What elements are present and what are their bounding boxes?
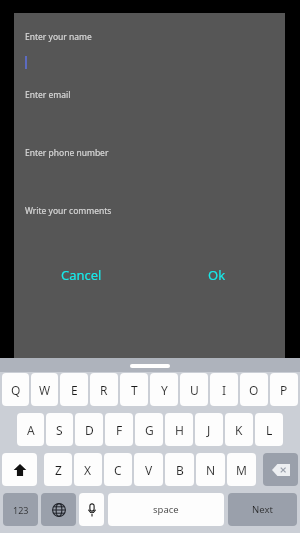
staticText: N: [206, 462, 216, 478]
staticText: C: [114, 462, 122, 478]
staticText: I: [222, 382, 227, 398]
button[interactable]: E: [60, 373, 88, 406]
button[interactable]: S: [46, 413, 73, 446]
button[interactable]: Y: [150, 373, 178, 406]
staticText: space: [153, 503, 179, 516]
button[interactable]: R: [90, 373, 118, 406]
button[interactable]: D: [75, 413, 103, 446]
staticText: J: [207, 422, 211, 438]
staticText: Z: [55, 462, 62, 478]
button[interactable]: B: [165, 453, 194, 486]
button[interactable]: space: [108, 493, 224, 526]
button[interactable]: Ok: [149, 260, 285, 290]
staticText: M: [236, 462, 247, 478]
staticText: P: [280, 382, 288, 398]
button[interactable]: A: [17, 413, 44, 446]
staticText: X: [84, 462, 92, 478]
staticText: E: [71, 382, 78, 398]
button[interactable]: Enter phone number: [14, 142, 285, 164]
button[interactable]: O: [240, 373, 268, 406]
button[interactable]: C: [104, 453, 132, 486]
staticText: U: [190, 382, 199, 398]
button[interactable]: Delete: [263, 453, 298, 486]
staticText: Q: [11, 382, 21, 398]
staticText: Cancel: [61, 266, 102, 284]
button[interactable]: Cancel: [14, 260, 149, 290]
button[interactable]: J: [195, 413, 223, 446]
staticText: D: [85, 422, 94, 438]
button[interactable]: Enter email: [14, 84, 285, 106]
staticText: B: [176, 462, 184, 478]
button[interactable]: N: [196, 453, 225, 486]
button[interactable]: G: [135, 413, 163, 446]
button[interactable]: Change keyboard language: [41, 493, 76, 526]
button[interactable]: M: [227, 453, 256, 486]
staticText: Next: [252, 503, 273, 516]
staticText: Write your comments: [25, 205, 112, 217]
staticText: V: [145, 462, 153, 478]
staticText: K: [235, 422, 243, 438]
button[interactable]: Next: [228, 493, 297, 526]
button[interactable]: [14, 48, 285, 76]
button[interactable]: W: [31, 373, 58, 406]
button[interactable]: 123: [3, 493, 38, 526]
button[interactable]: F: [105, 413, 133, 446]
button[interactable]: Q: [2, 373, 29, 406]
staticText: Enter phone number: [25, 147, 109, 159]
staticText: L: [266, 422, 273, 438]
staticText: A: [27, 422, 35, 438]
button[interactable]: Voice input: [79, 493, 104, 526]
button[interactable]: Write your comments: [14, 200, 285, 222]
button[interactable]: T: [120, 373, 148, 406]
staticText: Enter email: [25, 89, 71, 101]
staticText: Y: [161, 382, 168, 398]
button[interactable]: L: [255, 413, 283, 446]
staticText: S: [56, 422, 63, 438]
button[interactable]: I: [210, 373, 238, 406]
staticText: F: [116, 422, 123, 438]
button[interactable]: Enter your name: [14, 26, 285, 48]
staticText: G: [145, 422, 154, 438]
button[interactable]: Shift: [2, 453, 37, 486]
button[interactable]: H: [165, 413, 193, 446]
button[interactable]: K: [225, 413, 253, 446]
button[interactable]: V: [134, 453, 163, 486]
staticText: 123: [13, 504, 29, 516]
staticText: H: [175, 422, 184, 438]
button[interactable]: U: [180, 373, 208, 406]
staticText: Ok: [208, 266, 226, 284]
staticText: T: [131, 382, 138, 398]
staticText: W: [39, 382, 51, 398]
staticText: R: [100, 382, 108, 398]
button[interactable]: Z: [44, 453, 72, 486]
button[interactable]: P: [270, 373, 298, 406]
staticText: Enter your name: [25, 31, 92, 43]
staticText: O: [249, 382, 259, 398]
button[interactable]: X: [74, 453, 102, 486]
